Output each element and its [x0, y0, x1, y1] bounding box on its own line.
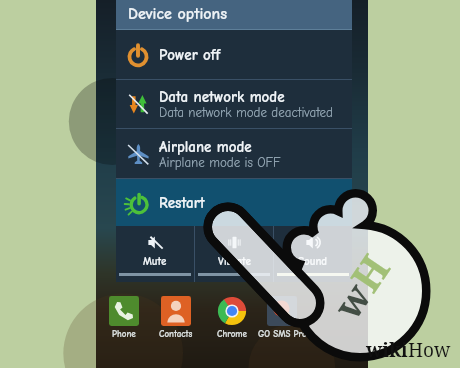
staticText: Sound — [298, 255, 328, 268]
button[interactable]: Airplane mode — [116, 129, 352, 178]
button[interactable]: Contacts — [150, 296, 202, 339]
other: Mute — [147, 234, 164, 251]
staticText: Phone — [112, 329, 136, 339]
staticText: GO SMS Pro — [258, 329, 307, 339]
staticText: wiki — [366, 337, 408, 363]
button[interactable]: Chrome — [206, 296, 258, 339]
button[interactable]: GO SMS Pro — [256, 296, 308, 339]
staticText: How — [408, 337, 451, 363]
staticText: Airplane mode is OFF — [159, 155, 281, 170]
other: Restart — [127, 192, 149, 214]
staticText: Data network mode deactivated — [159, 105, 333, 120]
button[interactable]: Restart — [116, 179, 352, 226]
button[interactable]: Data network mode — [116, 80, 352, 128]
staticText: H — [338, 243, 401, 301]
staticText: Airplane mode — [159, 138, 252, 155]
button[interactable]: Vibrate — [195, 226, 273, 282]
staticText: Restart — [159, 194, 205, 211]
other: Tap Restart — [0, 0, 460, 368]
button[interactable]: Sound — [274, 226, 352, 282]
other: Power off — [127, 44, 149, 66]
other: Data network mode — [127, 93, 149, 115]
staticText: Chrome — [217, 329, 247, 339]
button[interactable]: Mute — [116, 226, 194, 282]
other: Sound — [305, 234, 322, 251]
staticText: Power off — [159, 46, 221, 63]
other: Airplane mode — [127, 143, 149, 165]
staticText: Contacts — [159, 329, 193, 339]
button[interactable]: Phone — [98, 296, 150, 339]
staticText: w — [321, 272, 382, 328]
other: Vibrate — [226, 234, 243, 251]
button[interactable]: Power off — [116, 30, 352, 79]
staticText: Data network mode — [159, 88, 285, 105]
staticText: Vibrate — [218, 255, 251, 268]
staticText: Device options — [128, 5, 228, 23]
staticText: Mute — [143, 255, 167, 268]
